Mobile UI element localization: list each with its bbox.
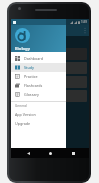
button[interactable] (13, 90, 87, 102)
staticText: Dashboard (24, 56, 44, 61)
staticText: Biology (15, 46, 30, 52)
staticText: 1:39 (81, 20, 87, 24)
button[interactable]: Practice (11, 72, 66, 81)
button[interactable] (13, 62, 87, 74)
button[interactable]: Flashcards (11, 81, 66, 90)
staticText: General (15, 104, 27, 108)
button[interactable]: App Version (11, 110, 66, 119)
staticText: Study (24, 65, 34, 70)
button[interactable] (13, 48, 87, 60)
button[interactable]: Dashboard (11, 54, 66, 63)
staticText: App Version (15, 112, 36, 117)
staticText: Practice (24, 74, 38, 79)
staticText: Glossary (24, 92, 39, 97)
button[interactable]: Glossary (11, 90, 66, 99)
button[interactable] (13, 76, 87, 88)
button[interactable]: Biology (11, 25, 66, 52)
staticText: Upgrade (15, 121, 31, 126)
staticText: Flashcards (24, 83, 43, 88)
button[interactable]: Home (44, 148, 56, 158)
button[interactable]: Back (22, 148, 34, 158)
button[interactable]: Upgrade (11, 119, 66, 128)
button[interactable]: Study (11, 63, 66, 72)
button[interactable]: More options (84, 27, 86, 34)
button[interactable]: Recent apps (67, 148, 79, 158)
